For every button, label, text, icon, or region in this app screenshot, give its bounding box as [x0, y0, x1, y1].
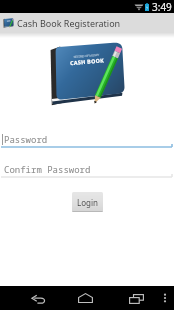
button[interactable]: Confirm Password [0, 163, 174, 178]
button[interactable]: More options [157, 286, 173, 310]
button[interactable]: Recent apps [120, 286, 152, 310]
staticText: 3:49 [152, 0, 172, 13]
button[interactable]: Home [69, 286, 101, 310]
button[interactable]: Password [0, 133, 174, 148]
staticText: Password [4, 133, 48, 145]
staticText: Cash Book Registeration [17, 17, 121, 29]
staticText: Login [77, 197, 98, 208]
staticText: Confirm Password [4, 163, 91, 175]
button[interactable]: Login [72, 192, 103, 212]
button[interactable]: Back [23, 286, 55, 310]
